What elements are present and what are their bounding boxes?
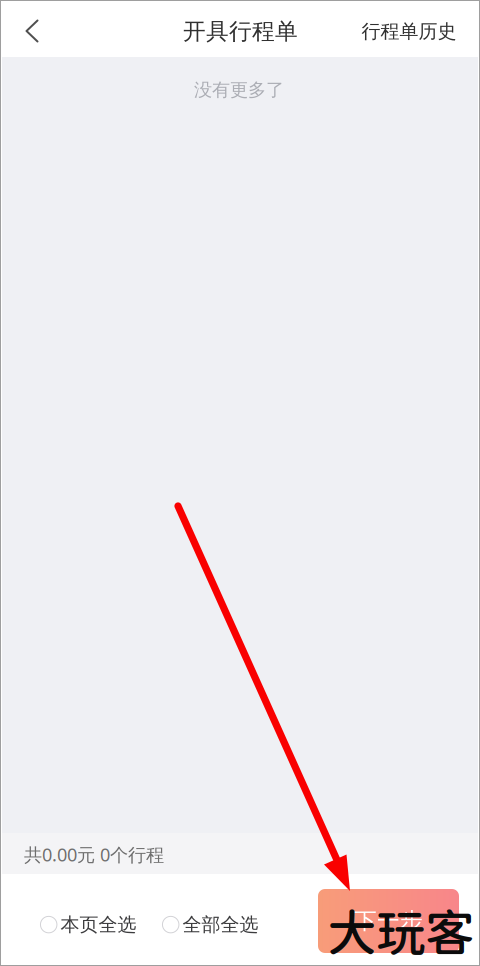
staticText: 全部全选 [182,913,258,937]
button[interactable]: 行程单历史 [357,9,461,53]
staticText: 大玩客 [327,903,474,961]
staticText: 下一步 [354,907,423,935]
button[interactable]: 返回 [9,9,55,53]
staticText: 没有更多了 [194,79,284,101]
staticText: 本页全选 [60,913,136,937]
button[interactable]: 本页全选 [38,902,138,948]
staticText: 共0.00元 0个行程 [24,842,164,867]
staticText: 开具行程单 [183,17,298,46]
staticText: 行程单历史 [361,20,456,43]
button[interactable]: 下一步 [318,889,459,953]
button[interactable]: 全部全选 [160,902,260,948]
